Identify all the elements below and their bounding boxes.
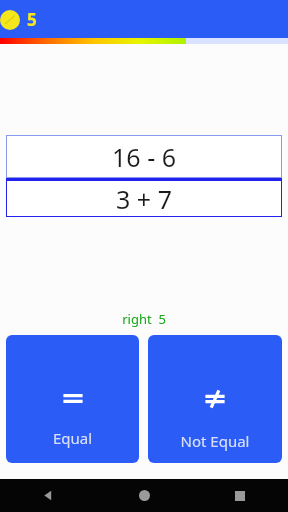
staticText: Equal xyxy=(6,428,139,448)
button[interactable]: 16 - 6 xyxy=(6,135,282,178)
other: Coins xyxy=(0,10,20,30)
button[interactable]: Coins xyxy=(0,8,43,31)
staticText: Not Equal xyxy=(148,431,282,451)
staticText: 16 - 6 xyxy=(112,140,176,174)
button[interactable]: Home xyxy=(96,479,192,512)
button[interactable]: Not Equal xyxy=(148,335,282,463)
button[interactable]: Back xyxy=(0,479,96,512)
staticText: 5 xyxy=(27,8,37,31)
staticText: right 5 xyxy=(0,310,288,328)
staticText: 3 + 7 xyxy=(116,182,172,216)
button[interactable]: Equal xyxy=(6,335,139,463)
button[interactable]: Recent apps xyxy=(192,479,288,512)
button[interactable]: 3 + 7 xyxy=(6,180,282,217)
